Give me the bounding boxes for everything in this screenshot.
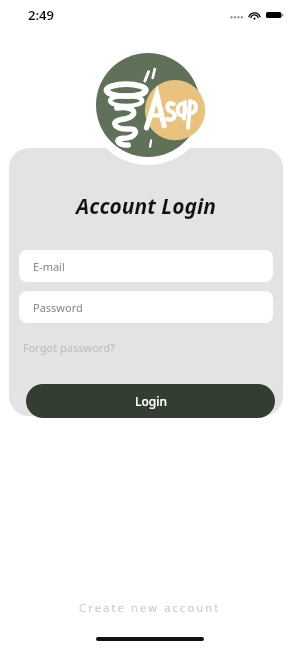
button[interactable]: Password (19, 291, 273, 323)
button[interactable]: Forgot password? (19, 337, 119, 358)
button[interactable]: E-mail (19, 250, 273, 282)
staticText: Account Login (76, 192, 216, 221)
staticText: 2:49 (28, 6, 54, 24)
staticText: Create new account (79, 600, 221, 615)
staticText: Login (135, 393, 167, 409)
staticText: Forgot password? (23, 340, 115, 355)
staticText: E-mail (33, 259, 65, 274)
button[interactable]: Login (26, 384, 275, 418)
staticText: Password (33, 300, 83, 315)
button[interactable]: Create new account (65, 594, 235, 621)
